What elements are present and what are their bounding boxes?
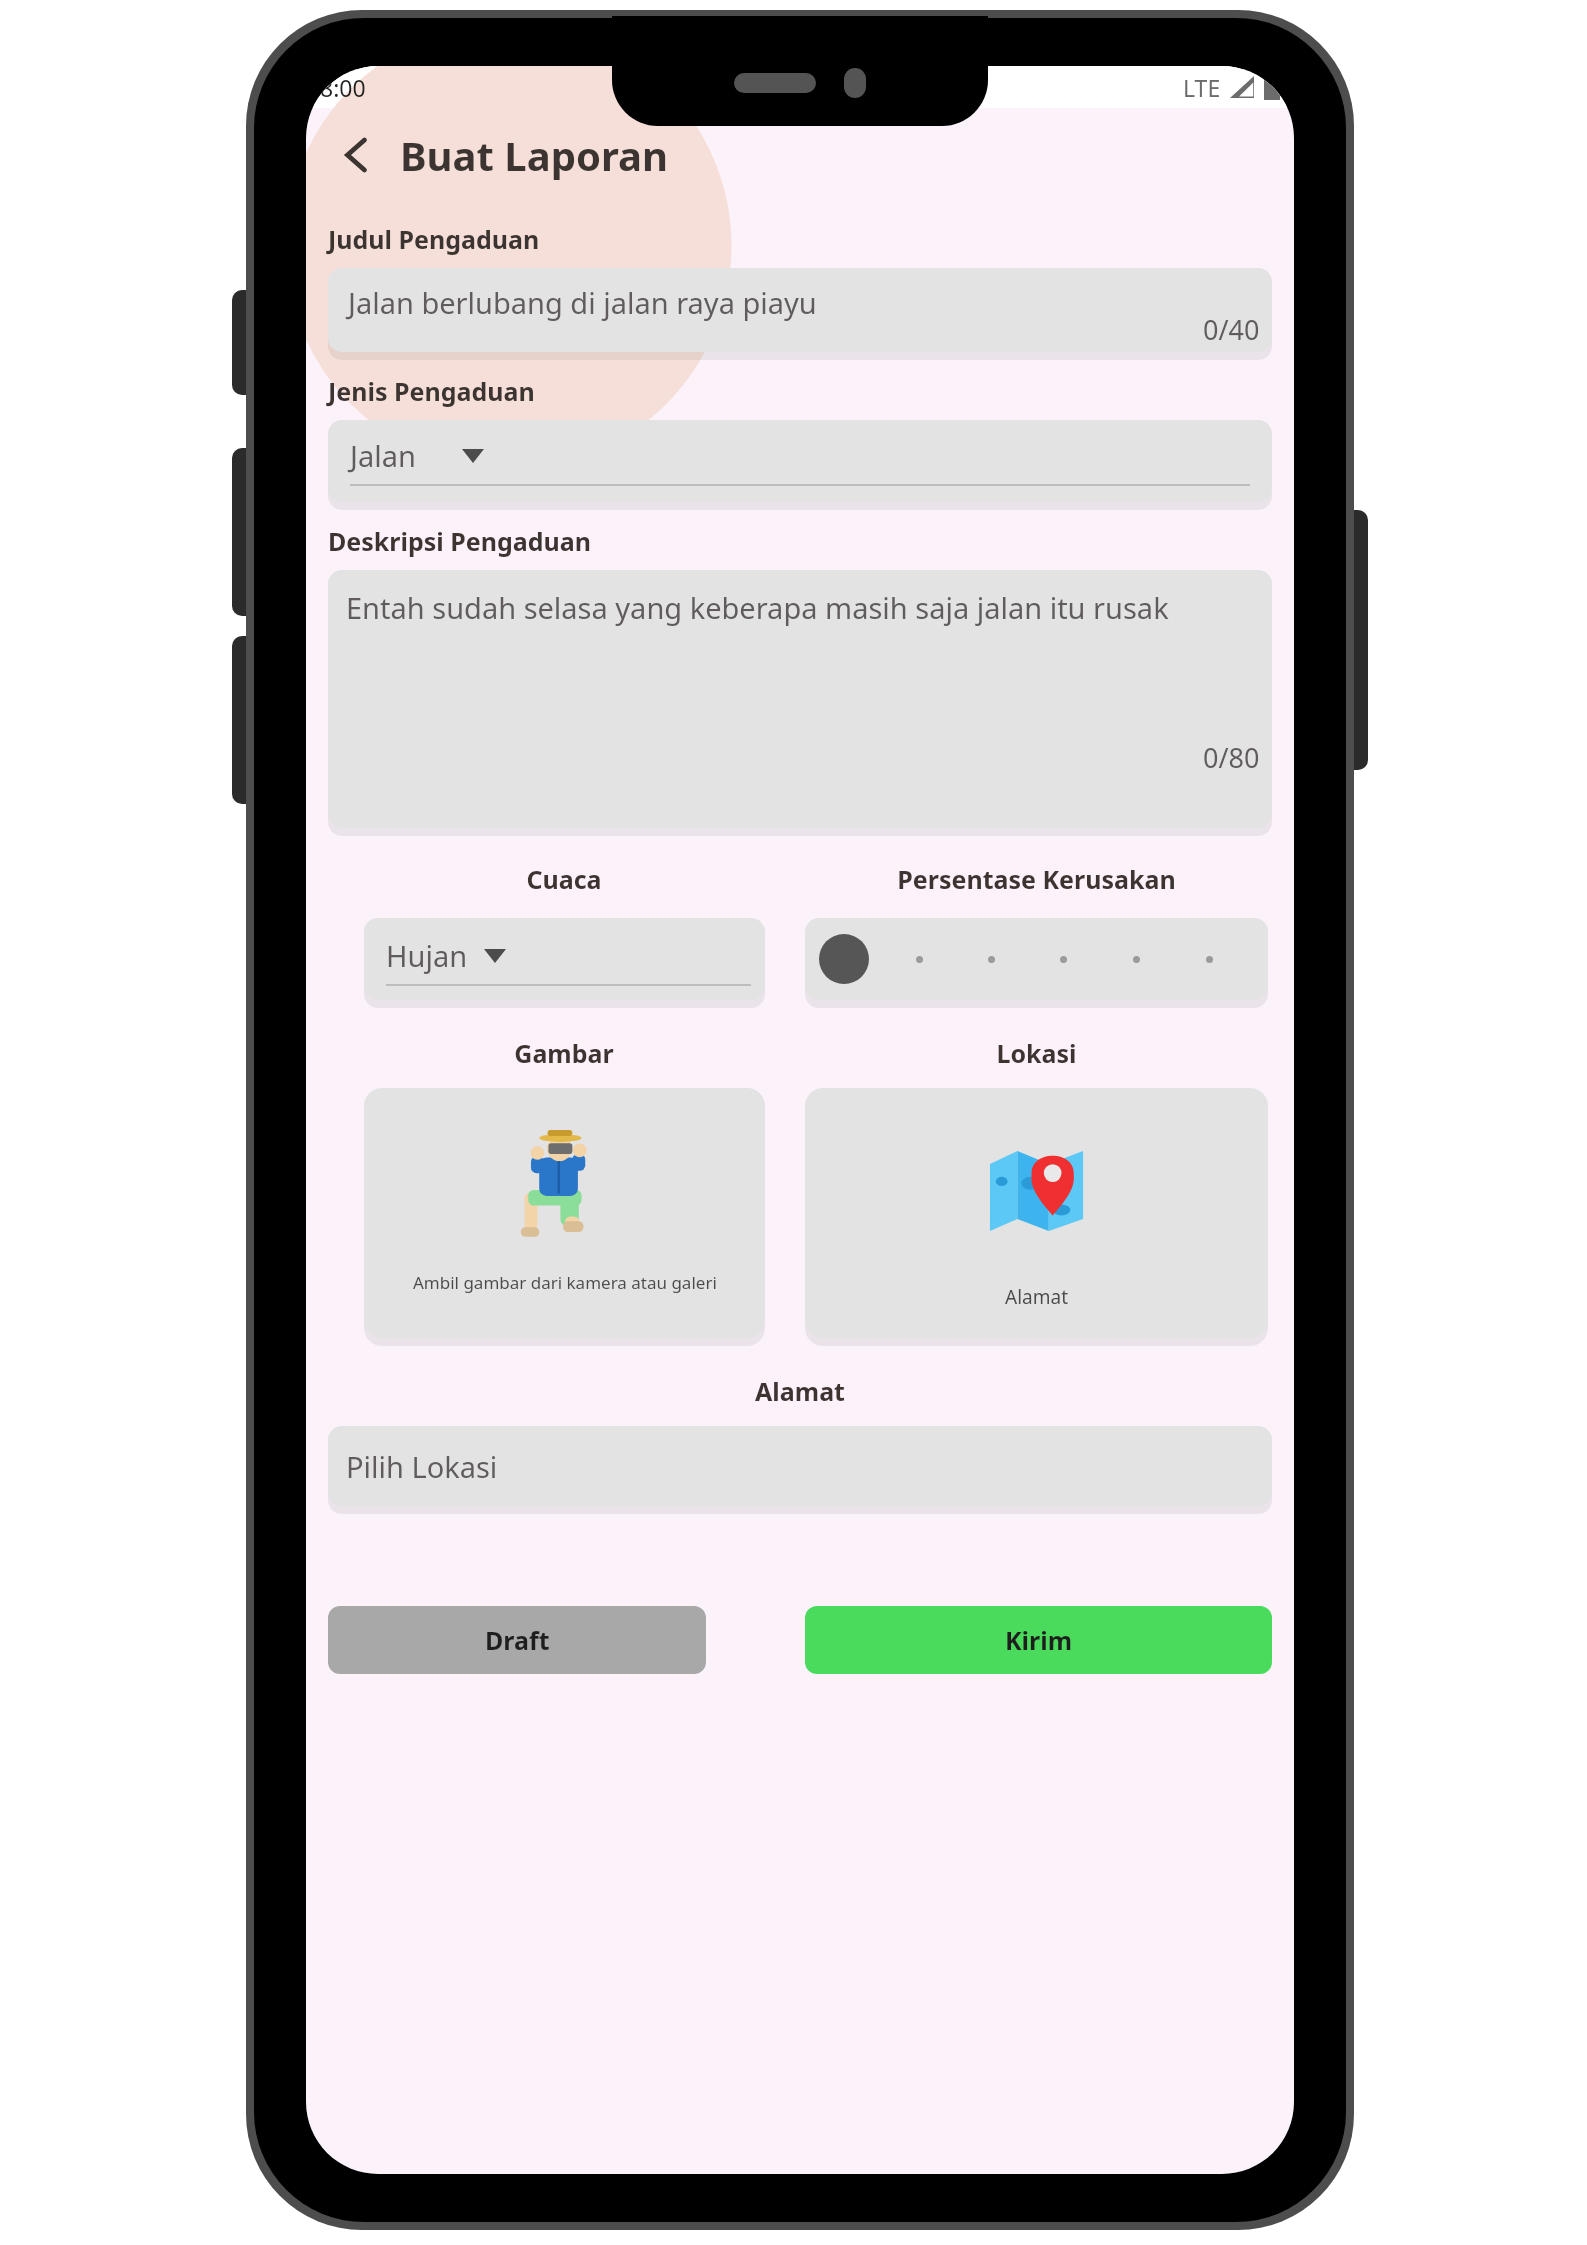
staticText: Deskripsi Pengaduan <box>328 524 592 558</box>
staticText: Kirim <box>1005 1623 1073 1657</box>
staticText: Persentase Kerusakan <box>897 862 1176 896</box>
staticText: Alamat <box>328 1374 1272 1408</box>
button[interactable]: Draft <box>328 1606 706 1674</box>
staticText: 0/40 <box>1203 311 1260 348</box>
staticText: Alamat <box>1005 1284 1068 1310</box>
button[interactable]: Pilih Lokasi <box>328 1426 1272 1506</box>
button[interactable]: Hujan <box>364 918 765 1000</box>
staticText: Buat Laporan <box>400 128 668 182</box>
staticText: Ambil gambar dari kamera atau galeri <box>413 1271 717 1294</box>
button[interactable]: Kirim <box>805 1606 1272 1674</box>
staticText: Jalan <box>350 436 416 475</box>
staticText: Jalan berlubang di jalan raya piayu <box>348 283 817 322</box>
staticText: Pilih Lokasi <box>346 1447 498 1486</box>
button[interactable]: Jalan <box>328 420 1272 502</box>
staticText: Judul Pengaduan <box>328 222 540 256</box>
staticText: Cuaca <box>526 862 602 896</box>
staticText: LTE <box>1183 72 1221 103</box>
button[interactable]: Ambil gambar dari kamera atau galeri <box>364 1088 765 1338</box>
button[interactable]: Back <box>328 126 386 184</box>
button[interactable]: Alamat <box>805 1088 1268 1338</box>
staticText: Jenis Pengaduan <box>328 374 535 408</box>
button[interactable] <box>805 918 1268 1000</box>
staticText: Lokasi <box>996 1036 1077 1070</box>
staticText: Entah sudah selasa yang keberapa masih s… <box>346 588 1169 627</box>
staticText: Draft <box>485 1623 550 1657</box>
staticText: Gambar <box>514 1036 614 1070</box>
staticText: 0/80 <box>1203 739 1260 776</box>
staticText: Hujan <box>386 936 468 975</box>
staticText: 8:00 <box>320 72 366 103</box>
